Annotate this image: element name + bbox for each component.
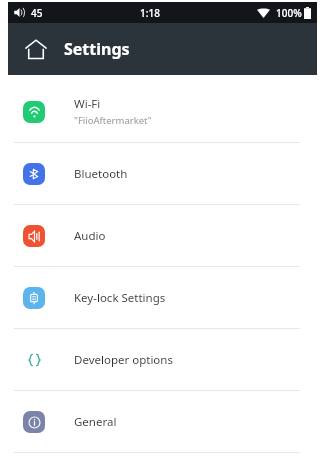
staticText: Key-lock Settings [74,290,166,306]
staticText: Bluetooth [74,166,128,182]
staticText: 1:18 [140,6,160,20]
button[interactable]: Bluetooth [8,143,317,204]
staticText: Settings [64,38,130,60]
button[interactable]: Developer options [8,329,317,390]
button[interactable]: Wi-Fi [8,81,317,142]
button[interactable]: Key-lock Settings [8,267,317,328]
staticText: 100% [276,6,302,20]
staticText: General [74,414,117,430]
staticText: Audio [74,228,106,244]
staticText: Developer options [74,352,173,368]
staticText: "FiioAftermarket" [74,114,152,127]
button[interactable]: Audio [8,205,317,266]
staticText: 45 [31,6,43,20]
staticText: Wi-Fi [74,96,101,112]
button[interactable]: General [8,391,317,452]
button[interactable]: Home [8,23,64,75]
